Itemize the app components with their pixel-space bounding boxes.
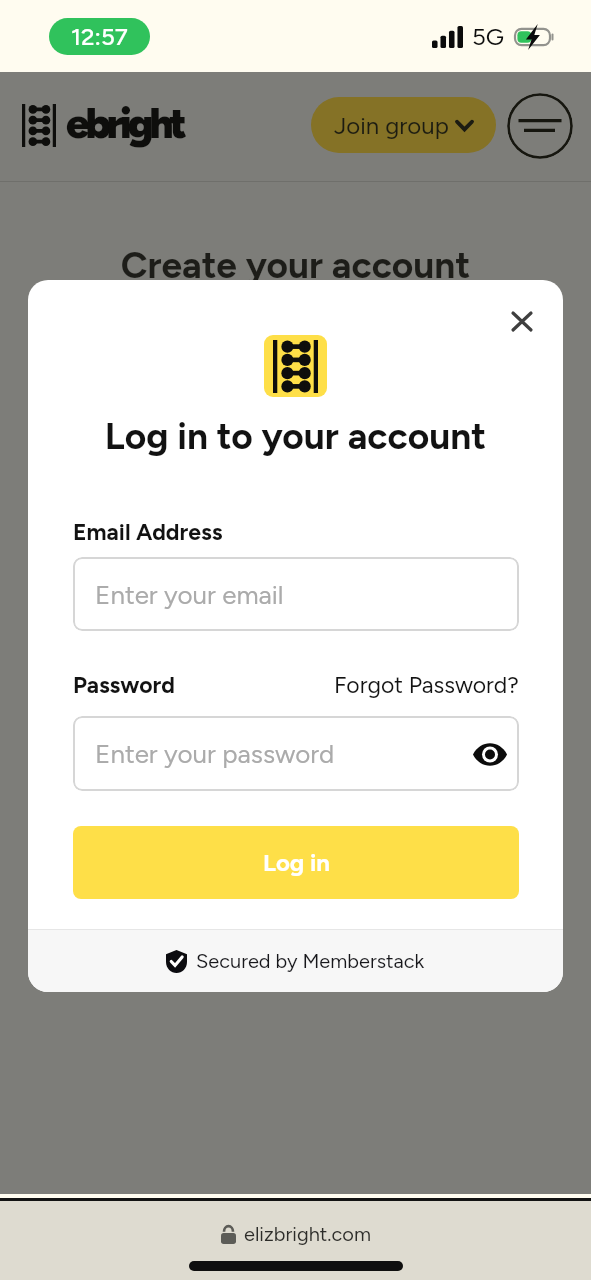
button[interactable]: Join group <box>311 97 496 153</box>
button[interactable]: Close <box>503 302 541 340</box>
staticText: elizbright.com <box>244 1222 371 1246</box>
staticText: Join group <box>334 111 449 140</box>
staticText: ebright <box>66 98 183 148</box>
staticText: 5G <box>472 22 505 51</box>
staticText: 12:57 <box>71 22 128 51</box>
button[interactable]: Open menu <box>507 93 573 159</box>
staticText: Log in <box>263 848 330 877</box>
staticText: Enter your password <box>95 738 335 769</box>
staticText: Log in to your account <box>28 414 563 458</box>
button[interactable]: Forgot Password? <box>334 671 519 699</box>
button[interactable]: Enter your password <box>73 716 519 791</box>
staticText: Secured by Memberstack <box>196 949 425 973</box>
staticText: Password <box>73 671 175 699</box>
staticText: Email Address <box>73 518 223 546</box>
staticText: Create your account <box>0 243 591 287</box>
button[interactable]: ebright <box>22 104 139 154</box>
button[interactable]: Show password <box>469 733 511 775</box>
button[interactable]: Enter your email <box>73 557 519 631</box>
button[interactable]: elizbright.com <box>221 1222 371 1246</box>
staticText: Forgot Password? <box>334 671 519 699</box>
staticText: Enter your email <box>95 579 284 610</box>
button[interactable]: Log in <box>73 826 519 899</box>
